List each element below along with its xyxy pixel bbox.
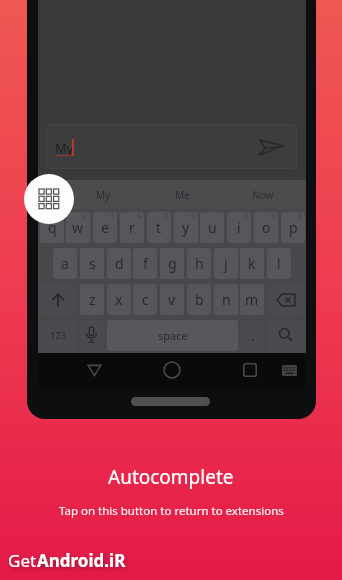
staticText: 1	[57, 212, 62, 221]
staticText: 7	[217, 212, 222, 221]
button[interactable]: b	[187, 284, 211, 315]
button[interactable]: t	[147, 212, 171, 243]
staticText: b	[195, 290, 204, 309]
button[interactable]: k	[240, 248, 264, 279]
staticText: q	[48, 218, 57, 237]
staticText: h	[195, 254, 204, 273]
button[interactable]: j	[214, 248, 238, 279]
staticText: v	[168, 290, 176, 309]
button[interactable]: z	[80, 284, 104, 315]
button[interactable]: space	[107, 320, 238, 351]
staticText: 123	[50, 329, 67, 342]
staticText: Get	[8, 549, 37, 572]
staticText: t	[156, 218, 162, 237]
button[interactable]: s	[80, 248, 104, 279]
button[interactable]: e	[93, 212, 117, 243]
staticText: r	[129, 218, 135, 237]
staticText: a	[61, 254, 69, 273]
button[interactable]: d	[107, 248, 131, 279]
staticText: o	[262, 218, 271, 237]
button[interactable]: n	[214, 284, 238, 315]
button[interactable]: Now	[243, 185, 283, 205]
staticText: Autocomplete	[108, 464, 234, 490]
button[interactable]: m	[240, 284, 264, 315]
button[interactable]: i	[227, 212, 251, 243]
button[interactable]	[163, 361, 181, 379]
button[interactable]	[257, 135, 285, 161]
staticText: 4	[137, 212, 142, 221]
staticText: g	[168, 254, 177, 273]
staticText: space	[158, 328, 188, 343]
staticText: 5	[164, 212, 169, 221]
button[interactable]: x	[107, 284, 131, 315]
button[interactable]: a	[53, 248, 77, 279]
staticText: 0	[298, 212, 303, 221]
button[interactable]: Me	[162, 185, 202, 205]
staticText: d	[115, 254, 124, 273]
button[interactable]: g	[160, 248, 184, 279]
staticText: My	[96, 188, 111, 202]
staticText: l	[277, 254, 281, 273]
button[interactable]	[80, 320, 104, 351]
button[interactable]: h	[187, 248, 211, 279]
staticText: 2	[83, 212, 88, 221]
staticText: 6	[191, 212, 196, 221]
button[interactable]: My	[83, 185, 123, 205]
button[interactable]: 123	[40, 320, 77, 351]
staticText: y	[182, 218, 190, 237]
staticText: n	[222, 290, 231, 309]
staticText: 9	[271, 212, 276, 221]
staticText: x	[115, 290, 123, 309]
staticText: Now	[252, 188, 274, 202]
staticText: c	[142, 290, 149, 309]
button[interactable]: f	[133, 248, 157, 279]
button[interactable]	[87, 364, 102, 377]
staticText: Android.iR	[37, 549, 126, 572]
staticText: p	[289, 218, 298, 237]
staticText: e	[101, 218, 109, 237]
staticText: Tap on this button to return to extensio…	[59, 503, 284, 519]
staticText: w	[72, 218, 84, 237]
staticText: My	[55, 139, 74, 157]
staticText: Me	[175, 188, 190, 202]
button[interactable]: w	[66, 212, 90, 243]
button[interactable]: l	[267, 248, 291, 279]
button[interactable]	[40, 284, 77, 315]
staticText: i	[237, 218, 241, 237]
button[interactable]: y	[174, 212, 198, 243]
staticText: 3	[110, 212, 115, 221]
staticText: f	[143, 254, 148, 273]
button[interactable]: o	[254, 212, 278, 243]
staticText: z	[89, 290, 96, 309]
button[interactable]: v	[160, 284, 184, 315]
staticText: .	[251, 326, 255, 345]
button[interactable]: r	[120, 212, 144, 243]
button[interactable]: u	[200, 212, 224, 243]
button[interactable]: q	[40, 212, 64, 243]
staticText: s	[89, 254, 96, 273]
staticText: k	[248, 254, 256, 273]
button[interactable]	[267, 284, 304, 315]
button[interactable]	[24, 174, 74, 224]
button[interactable]: p	[281, 212, 305, 243]
button[interactable]	[282, 365, 297, 376]
button[interactable]	[267, 320, 304, 351]
staticText: 8	[244, 212, 249, 221]
button[interactable]: c	[133, 284, 157, 315]
staticText: u	[208, 218, 217, 237]
button[interactable]	[243, 363, 257, 377]
staticText: m	[245, 290, 259, 309]
staticText: j	[224, 254, 228, 273]
